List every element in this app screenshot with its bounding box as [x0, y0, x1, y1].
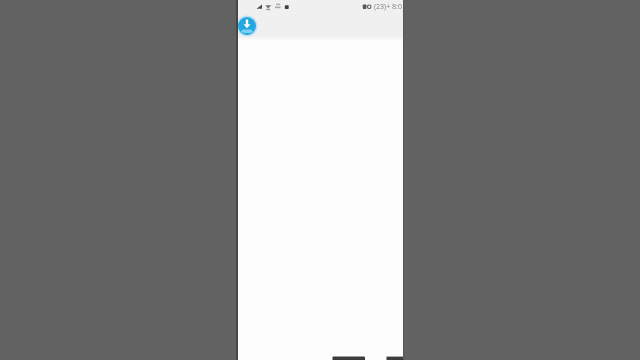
staticText: (23)+ 8:0 — [374, 2, 402, 12]
button[interactable] — [237, 16, 257, 36]
